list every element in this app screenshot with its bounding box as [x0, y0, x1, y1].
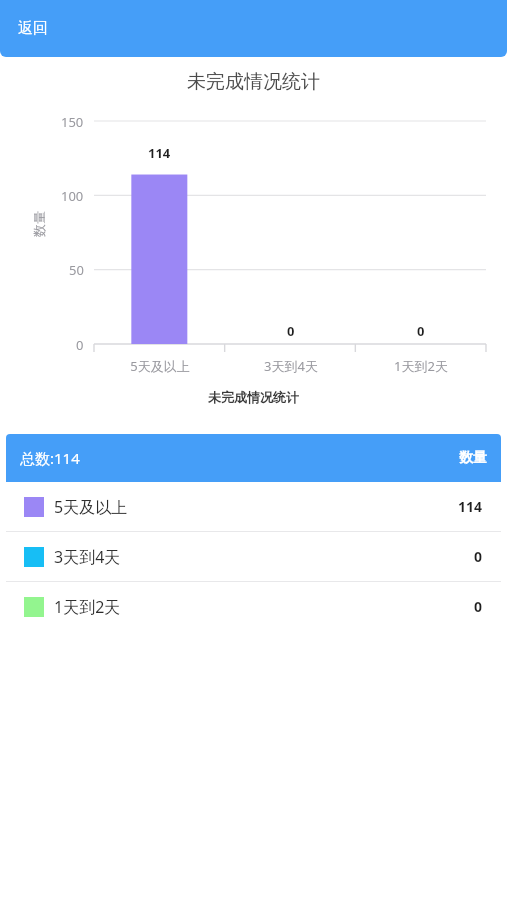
- staticText: 5天及以上: [54, 496, 128, 518]
- staticText: 114: [458, 497, 483, 516]
- staticText: 5天及以上: [130, 357, 190, 375]
- staticText: 50: [69, 261, 84, 279]
- button[interactable]: 1天到2天: [6, 582, 501, 631]
- staticText: 0: [474, 597, 483, 616]
- staticText: 3天到4天: [264, 357, 318, 375]
- staticText: 0: [76, 336, 84, 354]
- staticText: 3天到4天: [54, 546, 121, 568]
- staticText: 150: [61, 113, 84, 131]
- staticText: 114: [148, 144, 171, 162]
- staticText: 未完成情况统计: [208, 389, 299, 405]
- button[interactable]: 5天及以上: [6, 482, 501, 531]
- staticText: 1天到2天: [54, 596, 121, 618]
- button[interactable]: 返回: [6, 11, 60, 46]
- button[interactable]: 3天到4天: [6, 532, 501, 581]
- staticText: 0: [474, 547, 483, 566]
- staticText: 数量: [31, 211, 47, 237]
- staticText: 100: [61, 187, 84, 205]
- staticText: 数量: [459, 449, 487, 467]
- staticText: 0: [287, 322, 295, 340]
- staticText: 1天到2天: [394, 357, 448, 375]
- button[interactable]: 总数:114: [6, 434, 501, 482]
- staticText: 未完成情况统计: [187, 70, 320, 94]
- staticText: 返回: [18, 19, 48, 38]
- staticText: 0: [417, 322, 425, 340]
- staticText: 总数:114: [20, 448, 80, 468]
